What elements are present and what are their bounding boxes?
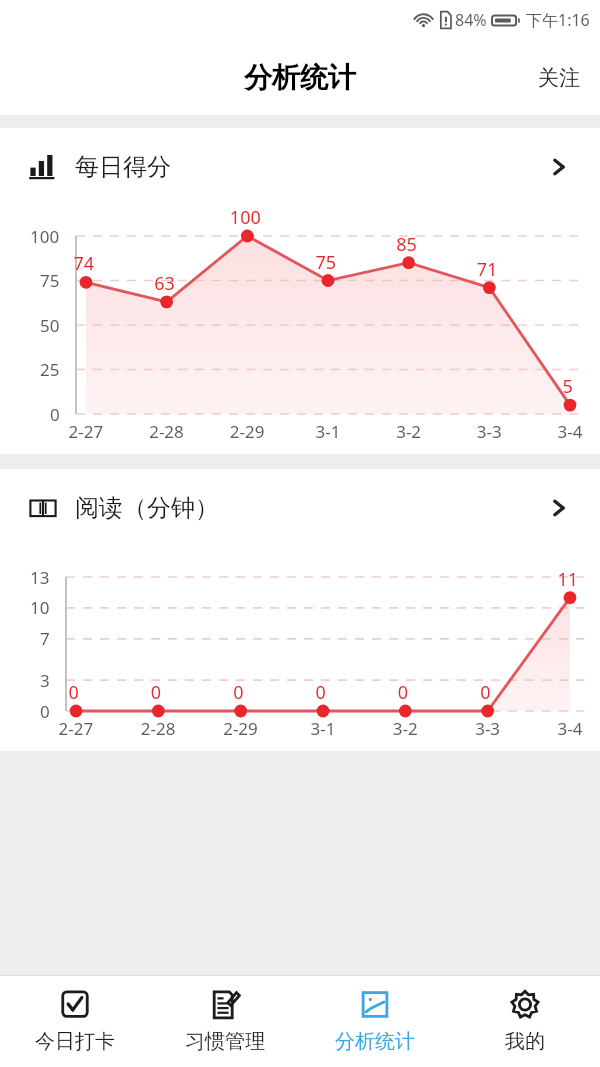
button[interactable]: 今日打卡 <box>0 976 150 1067</box>
other: Open 阅读（分钟） <box>546 495 572 521</box>
staticText: 我的 <box>505 1029 545 1054</box>
staticText: 分析统计 <box>244 60 356 95</box>
staticText: 阅读（分钟） <box>75 493 219 523</box>
button[interactable]: 习惯管理 <box>150 976 300 1067</box>
staticText: 关注 <box>538 65 580 91</box>
button[interactable]: 我的 <box>450 976 600 1067</box>
staticText: 今日打卡 <box>35 1029 115 1054</box>
button[interactable]: 阅读（分钟） <box>0 469 600 751</box>
staticText: 84% <box>455 9 487 31</box>
other: Open 每日得分 <box>546 154 572 180</box>
button[interactable]: 每日得分 <box>0 128 600 454</box>
staticText: 分析统计 <box>335 1029 415 1054</box>
button[interactable]: 分析统计 <box>300 976 450 1067</box>
staticText: 下午1:16 <box>526 9 590 31</box>
staticText: 习惯管理 <box>185 1029 265 1054</box>
staticText: 每日得分 <box>75 152 171 182</box>
button[interactable]: 关注 <box>518 53 600 103</box>
